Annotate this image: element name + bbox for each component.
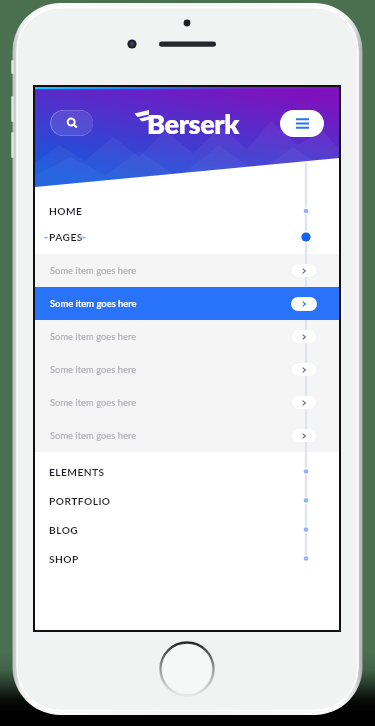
staticText: PAGES: [49, 231, 83, 243]
staticText: PORTFOLIO: [49, 495, 111, 507]
button[interactable]: Expand: [292, 429, 316, 442]
button[interactable]: Expand: [292, 330, 316, 343]
button[interactable]: Some item goes here: [35, 353, 339, 386]
button[interactable]: PAGES: [35, 224, 339, 250]
staticText: ELEMENTS: [49, 466, 105, 478]
staticText: HOME: [49, 205, 83, 217]
button[interactable]: SHOP: [35, 544, 339, 573]
staticText: Berserk: [147, 107, 239, 139]
staticText: Some item goes here: [50, 331, 137, 342]
button[interactable]: BLOG: [35, 515, 339, 544]
button[interactable]: Expand: [291, 297, 317, 311]
button[interactable]: Search: [50, 110, 93, 136]
button[interactable]: Expand: [292, 264, 316, 277]
button[interactable]: Some item goes here: [35, 320, 339, 353]
staticText: SHOP: [49, 553, 79, 565]
button[interactable]: Some item goes here: [35, 287, 339, 320]
button[interactable]: PORTFOLIO: [35, 486, 339, 515]
staticText: Some item goes here: [50, 364, 137, 375]
button[interactable]: Some item goes here: [35, 386, 339, 419]
button[interactable]: Expand: [292, 363, 316, 376]
staticText: Some item goes here: [50, 397, 137, 408]
button[interactable]: Some item goes here: [35, 254, 339, 287]
button[interactable]: Expand: [292, 396, 316, 409]
staticText: Some item goes here: [50, 265, 137, 276]
button[interactable]: Some item goes here: [35, 419, 339, 452]
staticText: Some item goes here: [50, 298, 137, 309]
staticText: Some item goes here: [50, 430, 137, 441]
staticText: BLOG: [49, 524, 79, 536]
button[interactable]: Menu: [280, 110, 324, 137]
button[interactable]: HOME: [35, 198, 339, 224]
button[interactable]: ELEMENTS: [35, 457, 339, 486]
